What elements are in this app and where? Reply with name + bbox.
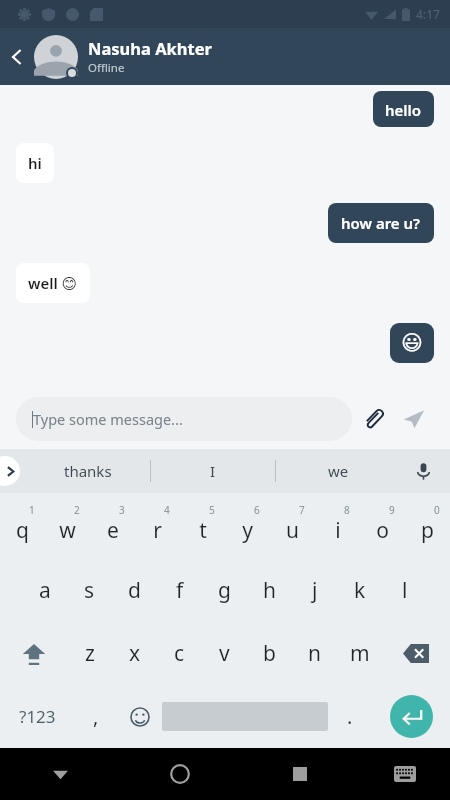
button[interactable]: 7 bbox=[270, 493, 315, 559]
button[interactable]: 8 bbox=[315, 493, 360, 559]
button[interactable]: Enter bbox=[372, 685, 450, 748]
staticText: ?123 bbox=[19, 705, 56, 728]
button[interactable]: c bbox=[157, 622, 202, 685]
staticText: 4:17 bbox=[416, 6, 440, 22]
staticText: I bbox=[210, 461, 216, 481]
button[interactable]: Type some message... bbox=[16, 397, 352, 441]
staticText: 4 bbox=[164, 503, 170, 517]
staticText: z bbox=[85, 639, 95, 668]
staticText: Nasuha Akhter bbox=[88, 37, 212, 59]
button[interactable]: Home bbox=[120, 748, 240, 800]
staticText: y bbox=[242, 516, 253, 545]
button[interactable]: hi bbox=[16, 143, 54, 183]
button[interactable]: 1 bbox=[0, 493, 45, 559]
staticText: r bbox=[153, 516, 162, 545]
button[interactable]: z bbox=[67, 622, 112, 685]
button[interactable]: 2 bbox=[45, 493, 90, 559]
button[interactable]: f bbox=[157, 559, 202, 622]
button[interactable]: 5 bbox=[180, 493, 225, 559]
button[interactable]: Back bbox=[0, 28, 34, 85]
button[interactable]: Recent apps bbox=[240, 748, 360, 800]
staticText: i bbox=[335, 516, 341, 545]
button[interactable]: Emoji bbox=[118, 685, 162, 748]
button[interactable]: Nasuha Akhter bbox=[88, 37, 450, 76]
button[interactable]: b bbox=[247, 622, 292, 685]
staticText: v bbox=[219, 639, 230, 668]
staticText: hello bbox=[385, 100, 422, 118]
button[interactable]: well 😊 bbox=[16, 263, 90, 303]
button[interactable]: a bbox=[22, 559, 67, 622]
button[interactable]: Switch keyboard bbox=[360, 748, 450, 800]
staticText: . bbox=[347, 703, 353, 730]
button[interactable]: s bbox=[67, 559, 112, 622]
staticText: e bbox=[107, 516, 119, 545]
button[interactable]: g bbox=[202, 559, 247, 622]
staticText: w bbox=[59, 516, 76, 545]
button[interactable]: Voice input bbox=[400, 449, 446, 493]
button[interactable]: 6 bbox=[225, 493, 270, 559]
staticText: p bbox=[421, 516, 434, 545]
staticText: q bbox=[16, 516, 29, 545]
staticText: g bbox=[218, 576, 231, 605]
button[interactable]: Send bbox=[394, 399, 434, 439]
staticText: b bbox=[263, 639, 276, 668]
button[interactable]: Contact avatar bbox=[34, 35, 78, 79]
staticText: s bbox=[84, 576, 95, 605]
button[interactable]: hello bbox=[373, 91, 434, 127]
staticText: 0 bbox=[434, 503, 440, 517]
button[interactable]: 4 bbox=[135, 493, 180, 559]
staticText: t bbox=[199, 516, 207, 545]
staticText: 😃 bbox=[401, 331, 423, 355]
staticText: u bbox=[286, 516, 299, 545]
staticText: 6 bbox=[254, 503, 260, 517]
staticText: well 😊 bbox=[28, 273, 78, 293]
staticText: n bbox=[308, 639, 321, 668]
button[interactable]: n bbox=[292, 622, 337, 685]
button[interactable]: l bbox=[382, 559, 427, 622]
staticText: m bbox=[350, 639, 370, 668]
button[interactable]: Attach file bbox=[352, 398, 394, 440]
staticText: f bbox=[176, 576, 184, 605]
staticText: a bbox=[39, 576, 51, 605]
staticText: how are u? bbox=[341, 213, 421, 233]
button[interactable]: Hide keyboard bbox=[0, 748, 120, 800]
staticText: l bbox=[402, 576, 408, 605]
staticText: 1 bbox=[29, 503, 35, 517]
button[interactable]: Backspace bbox=[382, 622, 450, 685]
button[interactable]: Shift bbox=[0, 622, 67, 685]
button[interactable]: I bbox=[151, 449, 275, 493]
staticText: 5 bbox=[209, 503, 215, 517]
staticText: we bbox=[328, 461, 349, 481]
button[interactable]: 3 bbox=[90, 493, 135, 559]
button[interactable]: 😃 bbox=[390, 323, 434, 363]
staticText: hi bbox=[28, 153, 42, 173]
button[interactable]: 0 bbox=[405, 493, 450, 559]
staticText: 9 bbox=[389, 503, 395, 517]
staticText: k bbox=[354, 576, 366, 605]
staticText: h bbox=[263, 576, 276, 605]
button[interactable]: d bbox=[112, 559, 157, 622]
button[interactable]: v bbox=[202, 622, 247, 685]
staticText: c bbox=[174, 639, 185, 668]
button[interactable]: , bbox=[74, 685, 118, 748]
staticText: x bbox=[129, 639, 141, 668]
staticText: 8 bbox=[344, 503, 350, 517]
button[interactable]: 9 bbox=[360, 493, 405, 559]
button[interactable]: j bbox=[292, 559, 337, 622]
button[interactable]: how are u? bbox=[328, 203, 434, 243]
button[interactable]: we bbox=[276, 449, 400, 493]
button[interactable]: . bbox=[328, 685, 372, 748]
staticText: , bbox=[93, 703, 99, 730]
button[interactable]: Expand toolbar bbox=[0, 456, 20, 486]
staticText: j bbox=[312, 576, 318, 605]
button[interactable]: m bbox=[337, 622, 382, 685]
staticText: o bbox=[376, 516, 389, 545]
button[interactable]: thanks bbox=[26, 449, 150, 493]
staticText: thanks bbox=[64, 461, 112, 481]
button[interactable]: h bbox=[247, 559, 292, 622]
button[interactable]: x bbox=[112, 622, 157, 685]
button[interactable]: ?123 bbox=[0, 685, 74, 748]
staticText: 2 bbox=[74, 503, 80, 517]
button[interactable]: k bbox=[337, 559, 382, 622]
